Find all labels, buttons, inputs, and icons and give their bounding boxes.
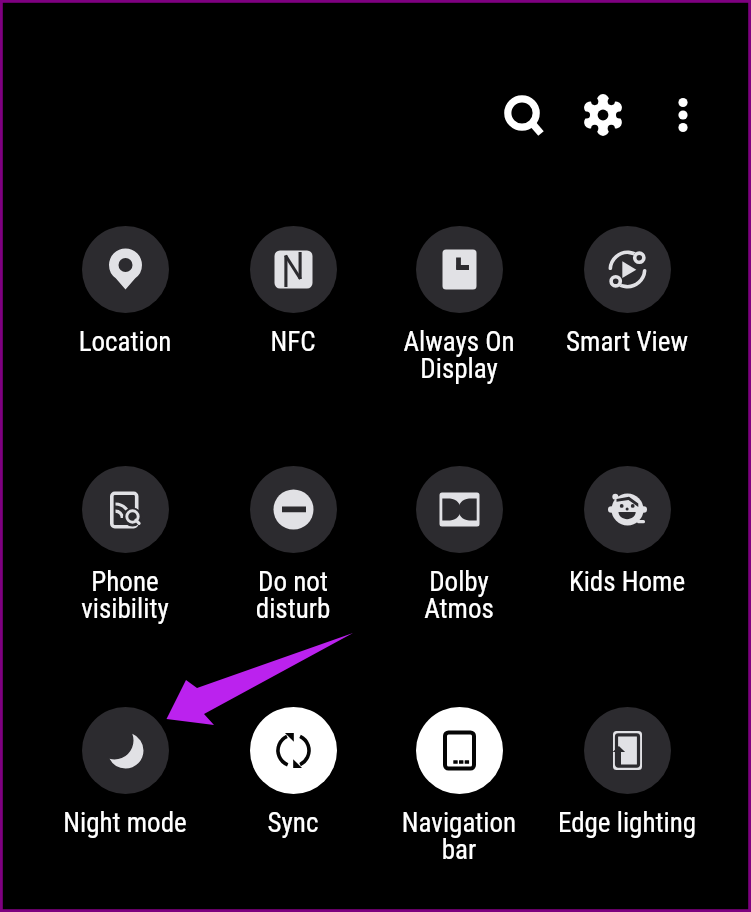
staticText: Phone visibility <box>37 566 213 625</box>
button[interactable]: Kids Home <box>539 466 715 646</box>
button[interactable]: Always On Display <box>371 226 547 406</box>
button[interactable]: Do not disturb <box>205 466 381 646</box>
button[interactable]: Sync <box>205 707 381 887</box>
staticText: NFC <box>205 326 381 358</box>
button[interactable]: Night mode <box>37 707 213 887</box>
button[interactable]: Dolby Atmos <box>371 466 547 646</box>
staticText: Location <box>37 326 213 358</box>
staticText: Edge lighting <box>539 807 715 839</box>
staticText: Night mode <box>37 807 213 839</box>
button[interactable]: Search <box>498 88 548 138</box>
staticText: Smart View <box>539 326 715 358</box>
button[interactable]: NFC <box>205 226 381 406</box>
button[interactable]: More options <box>660 90 706 136</box>
staticText: Navigation bar <box>371 807 547 866</box>
button[interactable]: Navigation bar <box>371 707 547 887</box>
button[interactable]: Settings <box>578 90 628 140</box>
button[interactable]: Edge lighting <box>539 707 715 887</box>
button[interactable]: Phone visibility <box>37 466 213 646</box>
button[interactable]: Smart View <box>539 226 715 406</box>
staticText: Always On Display <box>371 326 547 385</box>
staticText: Do not disturb <box>205 566 381 625</box>
button[interactable]: Location <box>37 226 213 406</box>
staticText: Kids Home <box>539 566 715 598</box>
staticText: Dolby Atmos <box>371 566 547 625</box>
staticText: Sync <box>205 807 381 839</box>
